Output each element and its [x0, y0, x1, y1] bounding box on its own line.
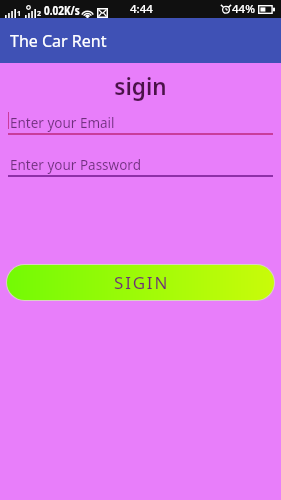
- button[interactable]: Enter your Email: [8, 110, 273, 135]
- button[interactable]: SIGIN: [7, 265, 274, 300]
- staticText: 1: [17, 9, 22, 19]
- button[interactable]: Enter your Password: [8, 152, 273, 177]
- staticText: 44%: [232, 1, 255, 17]
- staticText: Enter your Email: [10, 114, 115, 132]
- staticText: 2: [37, 9, 42, 19]
- staticText: SIGIN: [114, 271, 170, 294]
- staticText: 4:44: [130, 1, 153, 17]
- staticText: sigin: [0, 71, 281, 102]
- staticText: Enter your Password: [10, 156, 141, 174]
- staticText: 0.02K/s: [44, 2, 80, 19]
- staticText: The Car Rent: [10, 30, 107, 52]
